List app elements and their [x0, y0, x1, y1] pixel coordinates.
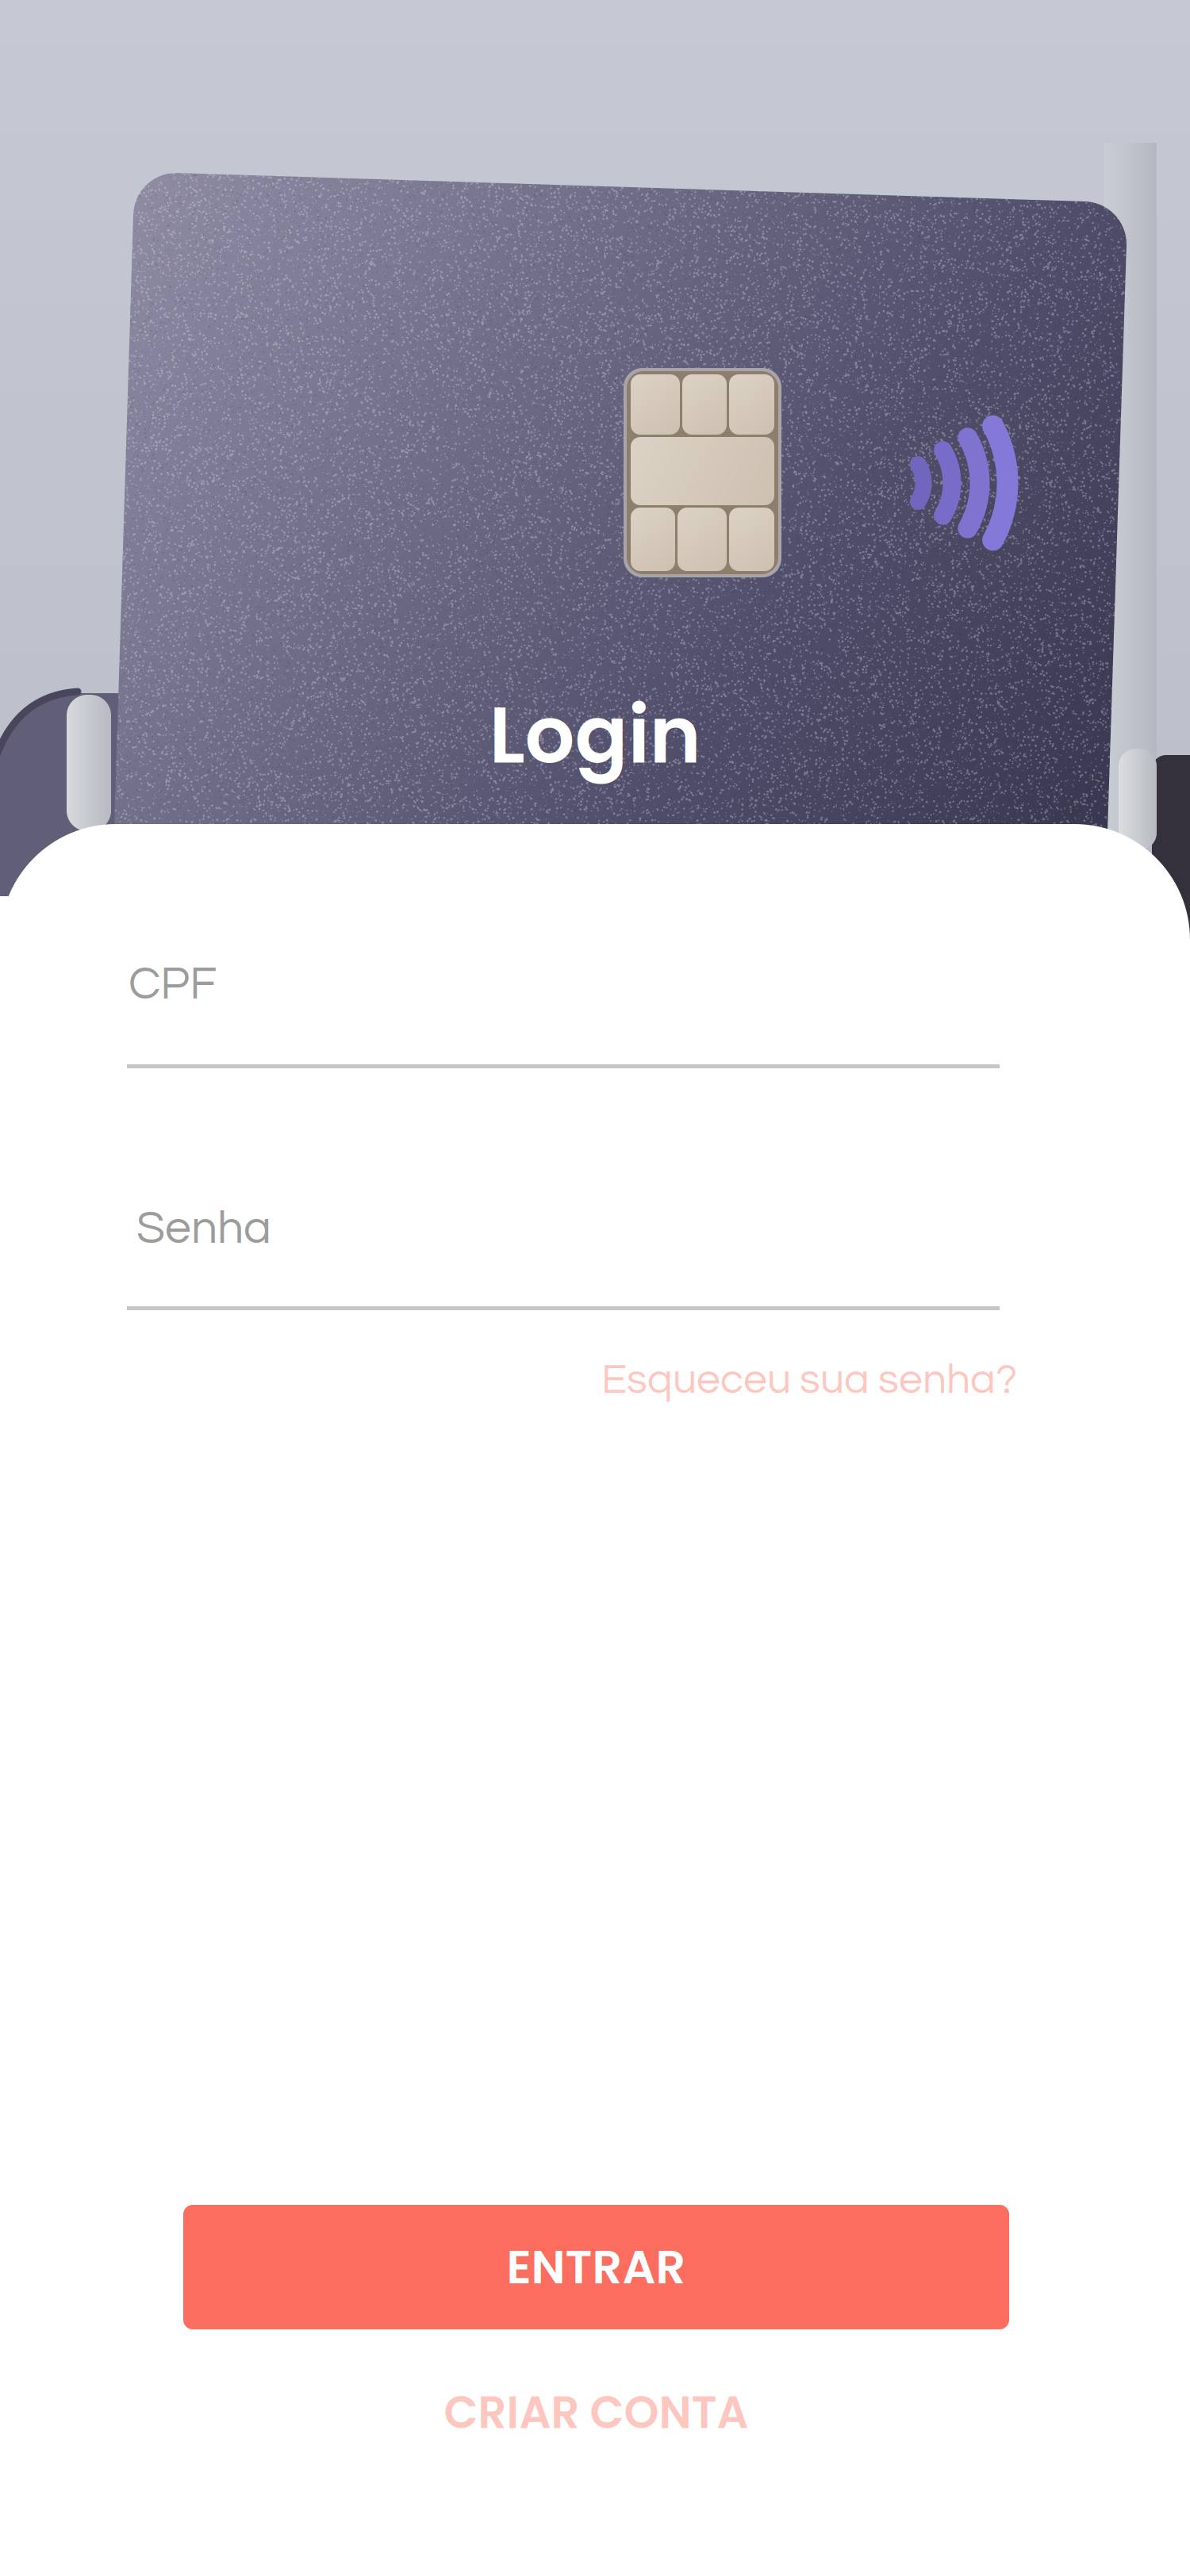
button[interactable]: Esqueceu sua senha?	[127, 1348, 1017, 1412]
staticText: Senha	[136, 1205, 271, 1253]
staticText: ENTRAR	[507, 2234, 686, 2300]
button[interactable]: CRIAR CONTA	[183, 2365, 1009, 2460]
button[interactable]: ENTRAR	[183, 2205, 1009, 2329]
staticText: CPF	[129, 960, 217, 1008]
staticText: Esqueceu sua senha?	[601, 1358, 1017, 1402]
staticText: Login	[489, 680, 701, 790]
staticText: CRIAR CONTA	[444, 2382, 749, 2444]
